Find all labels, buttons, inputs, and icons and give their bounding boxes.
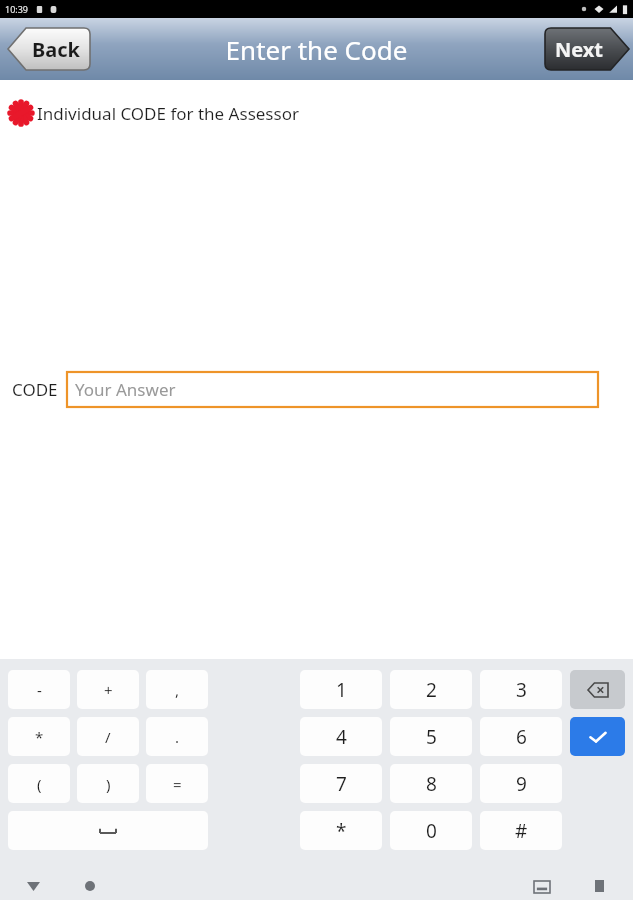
button[interactable]: .	[146, 717, 208, 756]
staticText: +	[104, 680, 113, 700]
button[interactable]: Your Answer	[67, 372, 598, 407]
button[interactable]: 9	[480, 764, 562, 803]
button[interactable]: 5	[390, 717, 472, 756]
button[interactable]: Next	[545, 28, 629, 70]
staticText: 9	[516, 771, 527, 797]
staticText: -	[37, 680, 42, 700]
button[interactable]: /	[77, 717, 139, 756]
button[interactable]: Backspace	[570, 670, 625, 709]
button[interactable]: Space	[8, 811, 208, 850]
button[interactable]: *	[8, 717, 70, 756]
button[interactable]: 3	[480, 670, 562, 709]
staticText: .	[175, 727, 180, 747]
staticText: Next	[555, 36, 604, 63]
staticText: Back	[32, 36, 80, 63]
button[interactable]: 7	[300, 764, 382, 803]
button[interactable]: 8	[390, 764, 472, 803]
staticText: ,	[175, 680, 180, 700]
staticText: 6	[516, 724, 527, 750]
button[interactable]: #	[480, 811, 562, 850]
staticText: 7	[336, 771, 347, 797]
staticText: /	[105, 727, 111, 747]
button[interactable]: )	[77, 764, 139, 803]
button[interactable]: ,	[146, 670, 208, 709]
button[interactable]: 6	[480, 717, 562, 756]
staticText: CODE	[12, 378, 58, 401]
staticText: 2	[426, 677, 437, 703]
staticText: Your Answer	[75, 378, 176, 401]
staticText: 0	[426, 818, 437, 844]
button[interactable]: -	[8, 670, 70, 709]
button[interactable]: Switch keyboard	[530, 875, 554, 899]
staticText: (	[37, 774, 42, 794]
staticText: *	[336, 818, 347, 844]
staticText: Enter the Code	[0, 32, 633, 67]
button[interactable]: 1	[300, 670, 382, 709]
button[interactable]: Home	[79, 875, 101, 897]
button[interactable]: *	[300, 811, 382, 850]
button[interactable]: Recent apps	[588, 875, 610, 897]
button[interactable]: +	[77, 670, 139, 709]
staticText: 1	[336, 677, 347, 703]
staticText: =	[173, 774, 182, 794]
button[interactable]: Enter	[570, 717, 625, 756]
staticText: 3	[516, 677, 527, 703]
button[interactable]: 4	[300, 717, 382, 756]
button[interactable]: 2	[390, 670, 472, 709]
staticText: #	[515, 818, 528, 844]
staticText: 10:39	[5, 3, 29, 15]
button[interactable]: Hide keyboard	[22, 875, 44, 897]
button[interactable]: 0	[390, 811, 472, 850]
staticText: Individual CODE for the Assessor	[37, 102, 299, 125]
button[interactable]: Back	[8, 28, 90, 70]
staticText: *	[35, 727, 44, 747]
staticText: 4	[336, 724, 347, 750]
staticText: 5	[426, 724, 437, 750]
staticText: 8	[426, 771, 437, 797]
button[interactable]: (	[8, 764, 70, 803]
staticText: )	[106, 774, 111, 794]
button[interactable]: =	[146, 764, 208, 803]
